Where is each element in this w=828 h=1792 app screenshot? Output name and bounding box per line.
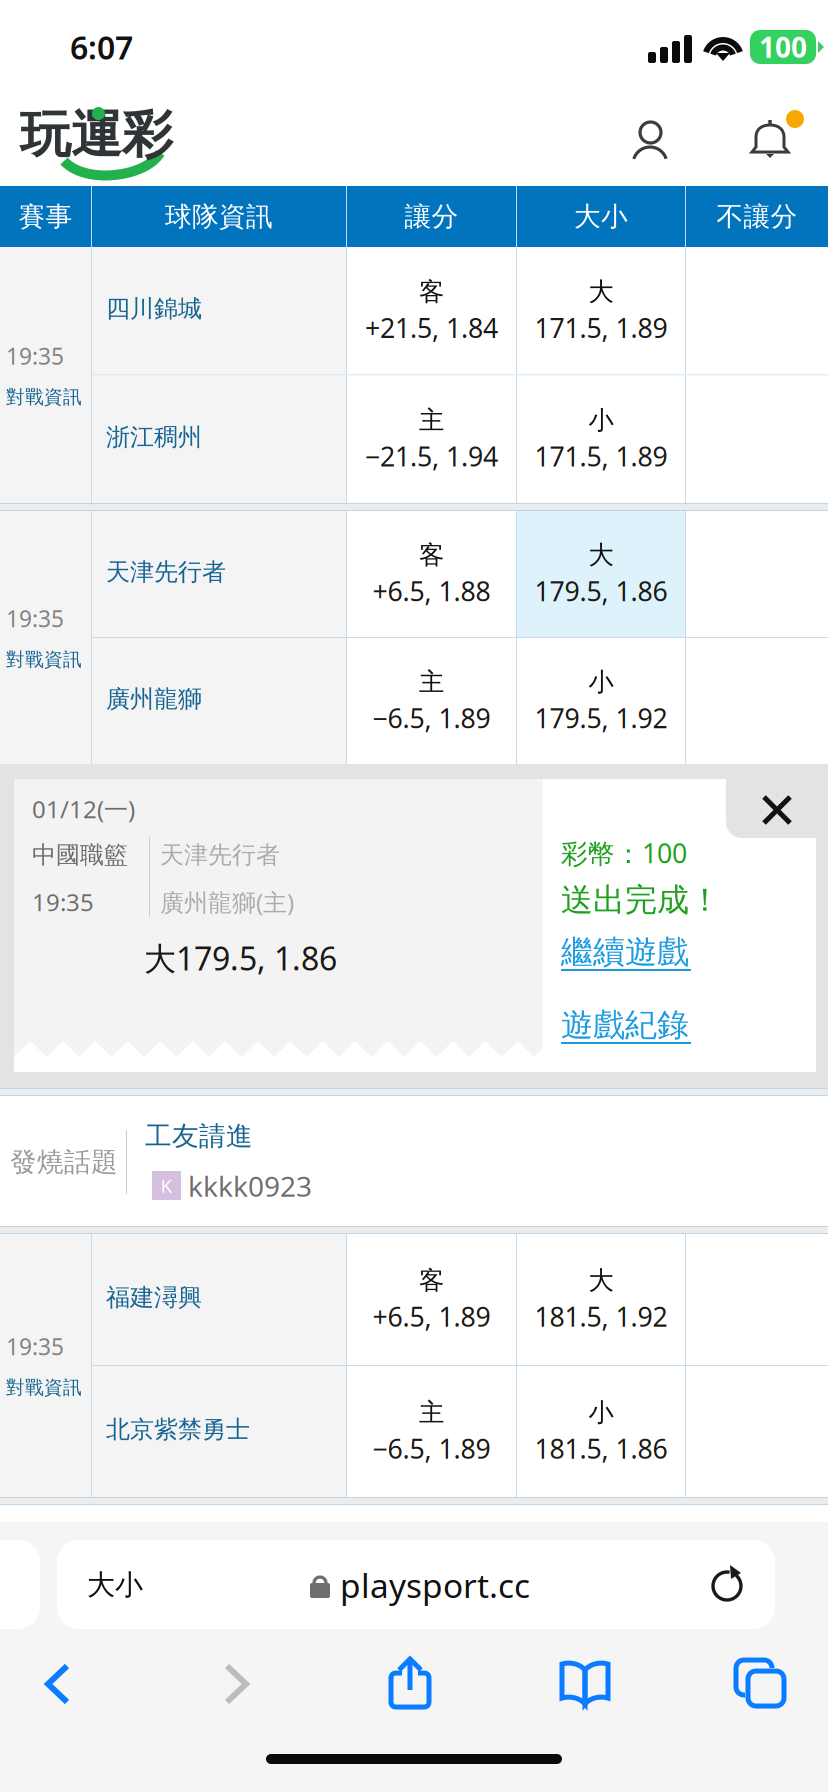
staticText: 天津先行者 — [160, 840, 280, 870]
staticText: 19:35 — [32, 886, 94, 918]
staticText: 天津先行者 — [106, 557, 226, 587]
button[interactable]: Share — [370, 1650, 450, 1722]
button[interactable]: 小 — [517, 1366, 685, 1497]
staticText: 對戰資訊 — [6, 1376, 82, 1399]
staticText: kkkk0923 — [188, 1167, 312, 1205]
staticText: 181.5, 1.86 — [534, 1431, 667, 1466]
staticText: −6.5, 1.89 — [372, 700, 490, 736]
staticText: 大小 — [574, 200, 628, 233]
button[interactable]: 發燒話題 — [0, 1096, 828, 1226]
staticText: 球隊資訊 — [165, 200, 273, 233]
staticText: 彩幣：100 — [561, 835, 687, 871]
button[interactable]: 不讓分 — [686, 186, 828, 247]
staticText: 客 — [419, 276, 444, 307]
staticText: 工友請進 — [145, 1120, 253, 1152]
staticText: 遊戲紀錄 — [561, 1005, 689, 1045]
button[interactable]: 大小 — [517, 186, 685, 247]
staticText: 賽事 — [18, 200, 72, 233]
staticText: 主 — [419, 405, 444, 436]
button[interactable]: 廣州龍獅 — [92, 638, 346, 764]
staticText: 19:35 — [6, 603, 64, 633]
button[interactable]: 大 — [517, 247, 685, 374]
button[interactable]: 大 — [517, 1234, 685, 1365]
staticText: 19:35 — [6, 1331, 64, 1361]
button[interactable]: Notifications — [742, 110, 806, 168]
staticText: 讓分 — [404, 200, 458, 233]
staticText: 玩運彩 — [20, 104, 173, 166]
staticText: 對戰資訊 — [6, 648, 82, 671]
staticText: 繼續遊戲 — [561, 932, 689, 972]
button[interactable]: 主 — [347, 375, 516, 503]
button[interactable]: 大 — [517, 511, 685, 637]
button[interactable]: 遊戲紀錄 — [561, 1007, 701, 1049]
staticText: K — [160, 1173, 172, 1198]
button[interactable]: Account — [624, 114, 676, 166]
staticText: 福建潯興 — [106, 1283, 202, 1312]
staticText: 發燒話題 — [10, 1146, 118, 1178]
staticText: 中國職籃 — [32, 840, 128, 870]
button[interactable]: 客 — [347, 247, 516, 374]
button[interactable]: 球隊資訊 — [92, 186, 346, 247]
staticText: 171.5, 1.89 — [534, 438, 667, 474]
staticText: 浙江稠州 — [106, 422, 202, 452]
button[interactable]: 讓分 — [347, 186, 516, 247]
staticText: 小 — [588, 666, 613, 697]
staticText: 179.5, 1.92 — [534, 700, 667, 736]
staticText: 客 — [419, 539, 444, 570]
button[interactable]: Close — [726, 779, 816, 841]
staticText: 廣州龍獅 — [106, 684, 202, 714]
button[interactable]: 客 — [347, 511, 516, 637]
staticText: 大 — [588, 539, 613, 570]
staticText: +21.5, 1.84 — [365, 310, 498, 345]
button[interactable]: 賽事 — [0, 186, 91, 247]
staticText: 小 — [588, 405, 613, 436]
staticText: 大小 — [87, 1568, 143, 1602]
button[interactable]: 福建潯興 — [92, 1234, 346, 1365]
staticText: 小 — [588, 1397, 613, 1428]
staticText: 客 — [419, 1265, 444, 1296]
staticText: +6.5, 1.88 — [372, 573, 490, 609]
staticText: 四川錦城 — [106, 294, 202, 323]
staticText: 01/12(一) — [32, 793, 135, 825]
staticText: 北京紫禁勇士 — [106, 1415, 250, 1444]
button[interactable]: 主 — [347, 638, 516, 764]
button[interactable]: 小 — [517, 375, 685, 503]
button[interactable]: Tabs — [720, 1650, 800, 1722]
staticText: 179.5, 1.86 — [534, 573, 667, 609]
staticText: 主 — [419, 666, 444, 697]
staticText: 送出完成！ — [561, 880, 721, 920]
button[interactable]: Bookmarks — [545, 1650, 625, 1722]
staticText: 對戰資訊 — [6, 385, 82, 408]
button[interactable]: 小 — [517, 638, 685, 764]
button[interactable]: 繼續遊戲 — [561, 934, 701, 976]
staticText: 大179.5, 1.86 — [144, 937, 337, 979]
staticText: 6:07 — [70, 26, 133, 68]
button[interactable]: 四川錦城 — [92, 247, 346, 374]
staticText: +6.5, 1.89 — [372, 1299, 490, 1334]
staticText: −21.5, 1.94 — [365, 438, 498, 474]
button[interactable]: 客 — [347, 1234, 516, 1365]
staticText: 181.5, 1.92 — [534, 1299, 667, 1334]
staticText: 171.5, 1.89 — [534, 310, 667, 345]
staticText: −6.5, 1.89 — [372, 1431, 490, 1466]
button[interactable]: Forward — [196, 1650, 276, 1722]
button[interactable]: 北京紫禁勇士 — [92, 1366, 346, 1497]
button[interactable]: 天津先行者 — [92, 511, 346, 637]
staticText: 大 — [588, 276, 613, 307]
button[interactable]: 主 — [347, 1366, 516, 1497]
button[interactable]: Back — [18, 1650, 98, 1722]
staticText: 不讓分 — [716, 200, 797, 233]
staticText: 100 — [759, 28, 807, 66]
button[interactable]: 浙江稠州 — [92, 375, 346, 503]
staticText: 主 — [419, 1397, 444, 1428]
staticText: playsport.cc — [340, 1563, 530, 1607]
staticText: 廣州龍獅(主) — [160, 886, 294, 918]
staticText: 19:35 — [6, 341, 64, 371]
staticText: 大 — [588, 1265, 613, 1296]
button[interactable]: 大小 — [57, 1540, 775, 1629]
